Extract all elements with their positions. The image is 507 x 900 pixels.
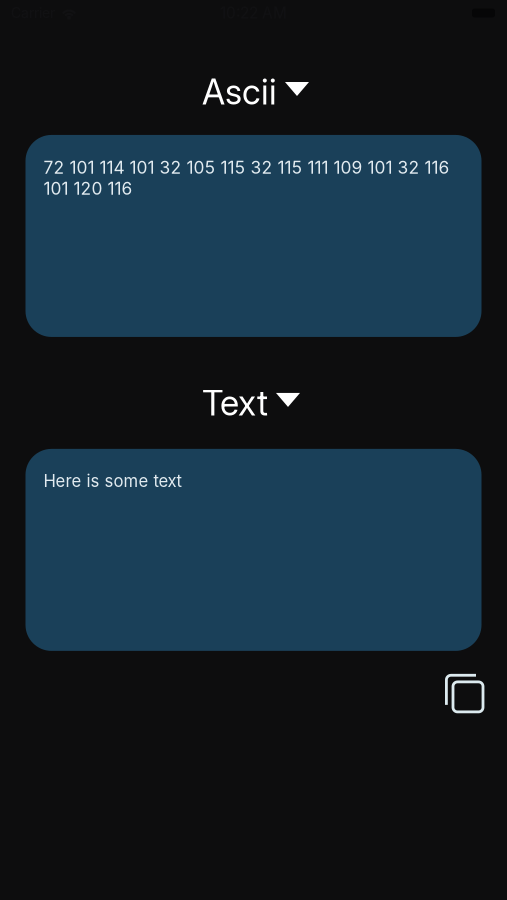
button[interactable]: Copy bbox=[445, 674, 483, 712]
staticText: 72 101 114 101 32 105 115 32 115 111 109… bbox=[43, 157, 449, 178]
staticText: 101 120 116 bbox=[43, 178, 132, 199]
button[interactable]: Ascii bbox=[202, 67, 309, 117]
staticText: Ascii bbox=[202, 71, 277, 113]
staticText: Here is some text bbox=[43, 471, 181, 491]
staticText: Text bbox=[202, 382, 268, 424]
button[interactable]: Text bbox=[202, 378, 300, 428]
